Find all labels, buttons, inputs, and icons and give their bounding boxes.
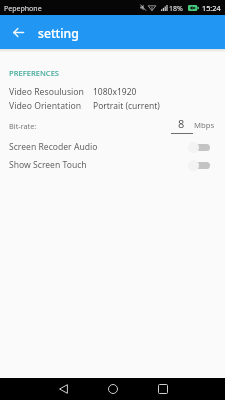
button[interactable]: Show Screen Touch bbox=[0, 157, 225, 173]
staticText: Mbps bbox=[194, 120, 215, 130]
staticText: Pepephone bbox=[4, 4, 42, 14]
staticText: setting bbox=[38, 25, 79, 42]
staticText: 18% bbox=[169, 4, 183, 14]
staticText: Portrait (current) bbox=[93, 100, 160, 112]
staticText: 8 bbox=[178, 116, 185, 131]
staticText: 15:24 bbox=[202, 3, 221, 13]
button[interactable]: Video Resoulusion bbox=[0, 85, 225, 99]
staticText: Screen Recoder Audio bbox=[9, 141, 98, 153]
staticText: Show Screen Touch bbox=[9, 159, 87, 171]
button[interactable]: Screen Recoder Audio bbox=[0, 139, 225, 155]
button[interactable]: Video Orientation bbox=[0, 99, 225, 113]
staticText: Bit-rate: bbox=[9, 121, 37, 131]
staticText: PREFERENCES bbox=[9, 68, 60, 78]
staticText: Video Resoulusion bbox=[9, 86, 84, 98]
staticText: 1080x1920 bbox=[93, 86, 137, 98]
button[interactable]: Home bbox=[94, 378, 132, 400]
button[interactable]: Back bbox=[44, 378, 82, 400]
button[interactable]: Bit-rate: bbox=[0, 109, 225, 129]
button[interactable]: Recent apps bbox=[144, 378, 182, 400]
button[interactable]: Back bbox=[6, 20, 30, 44]
staticText: Video Orientation bbox=[9, 100, 82, 112]
